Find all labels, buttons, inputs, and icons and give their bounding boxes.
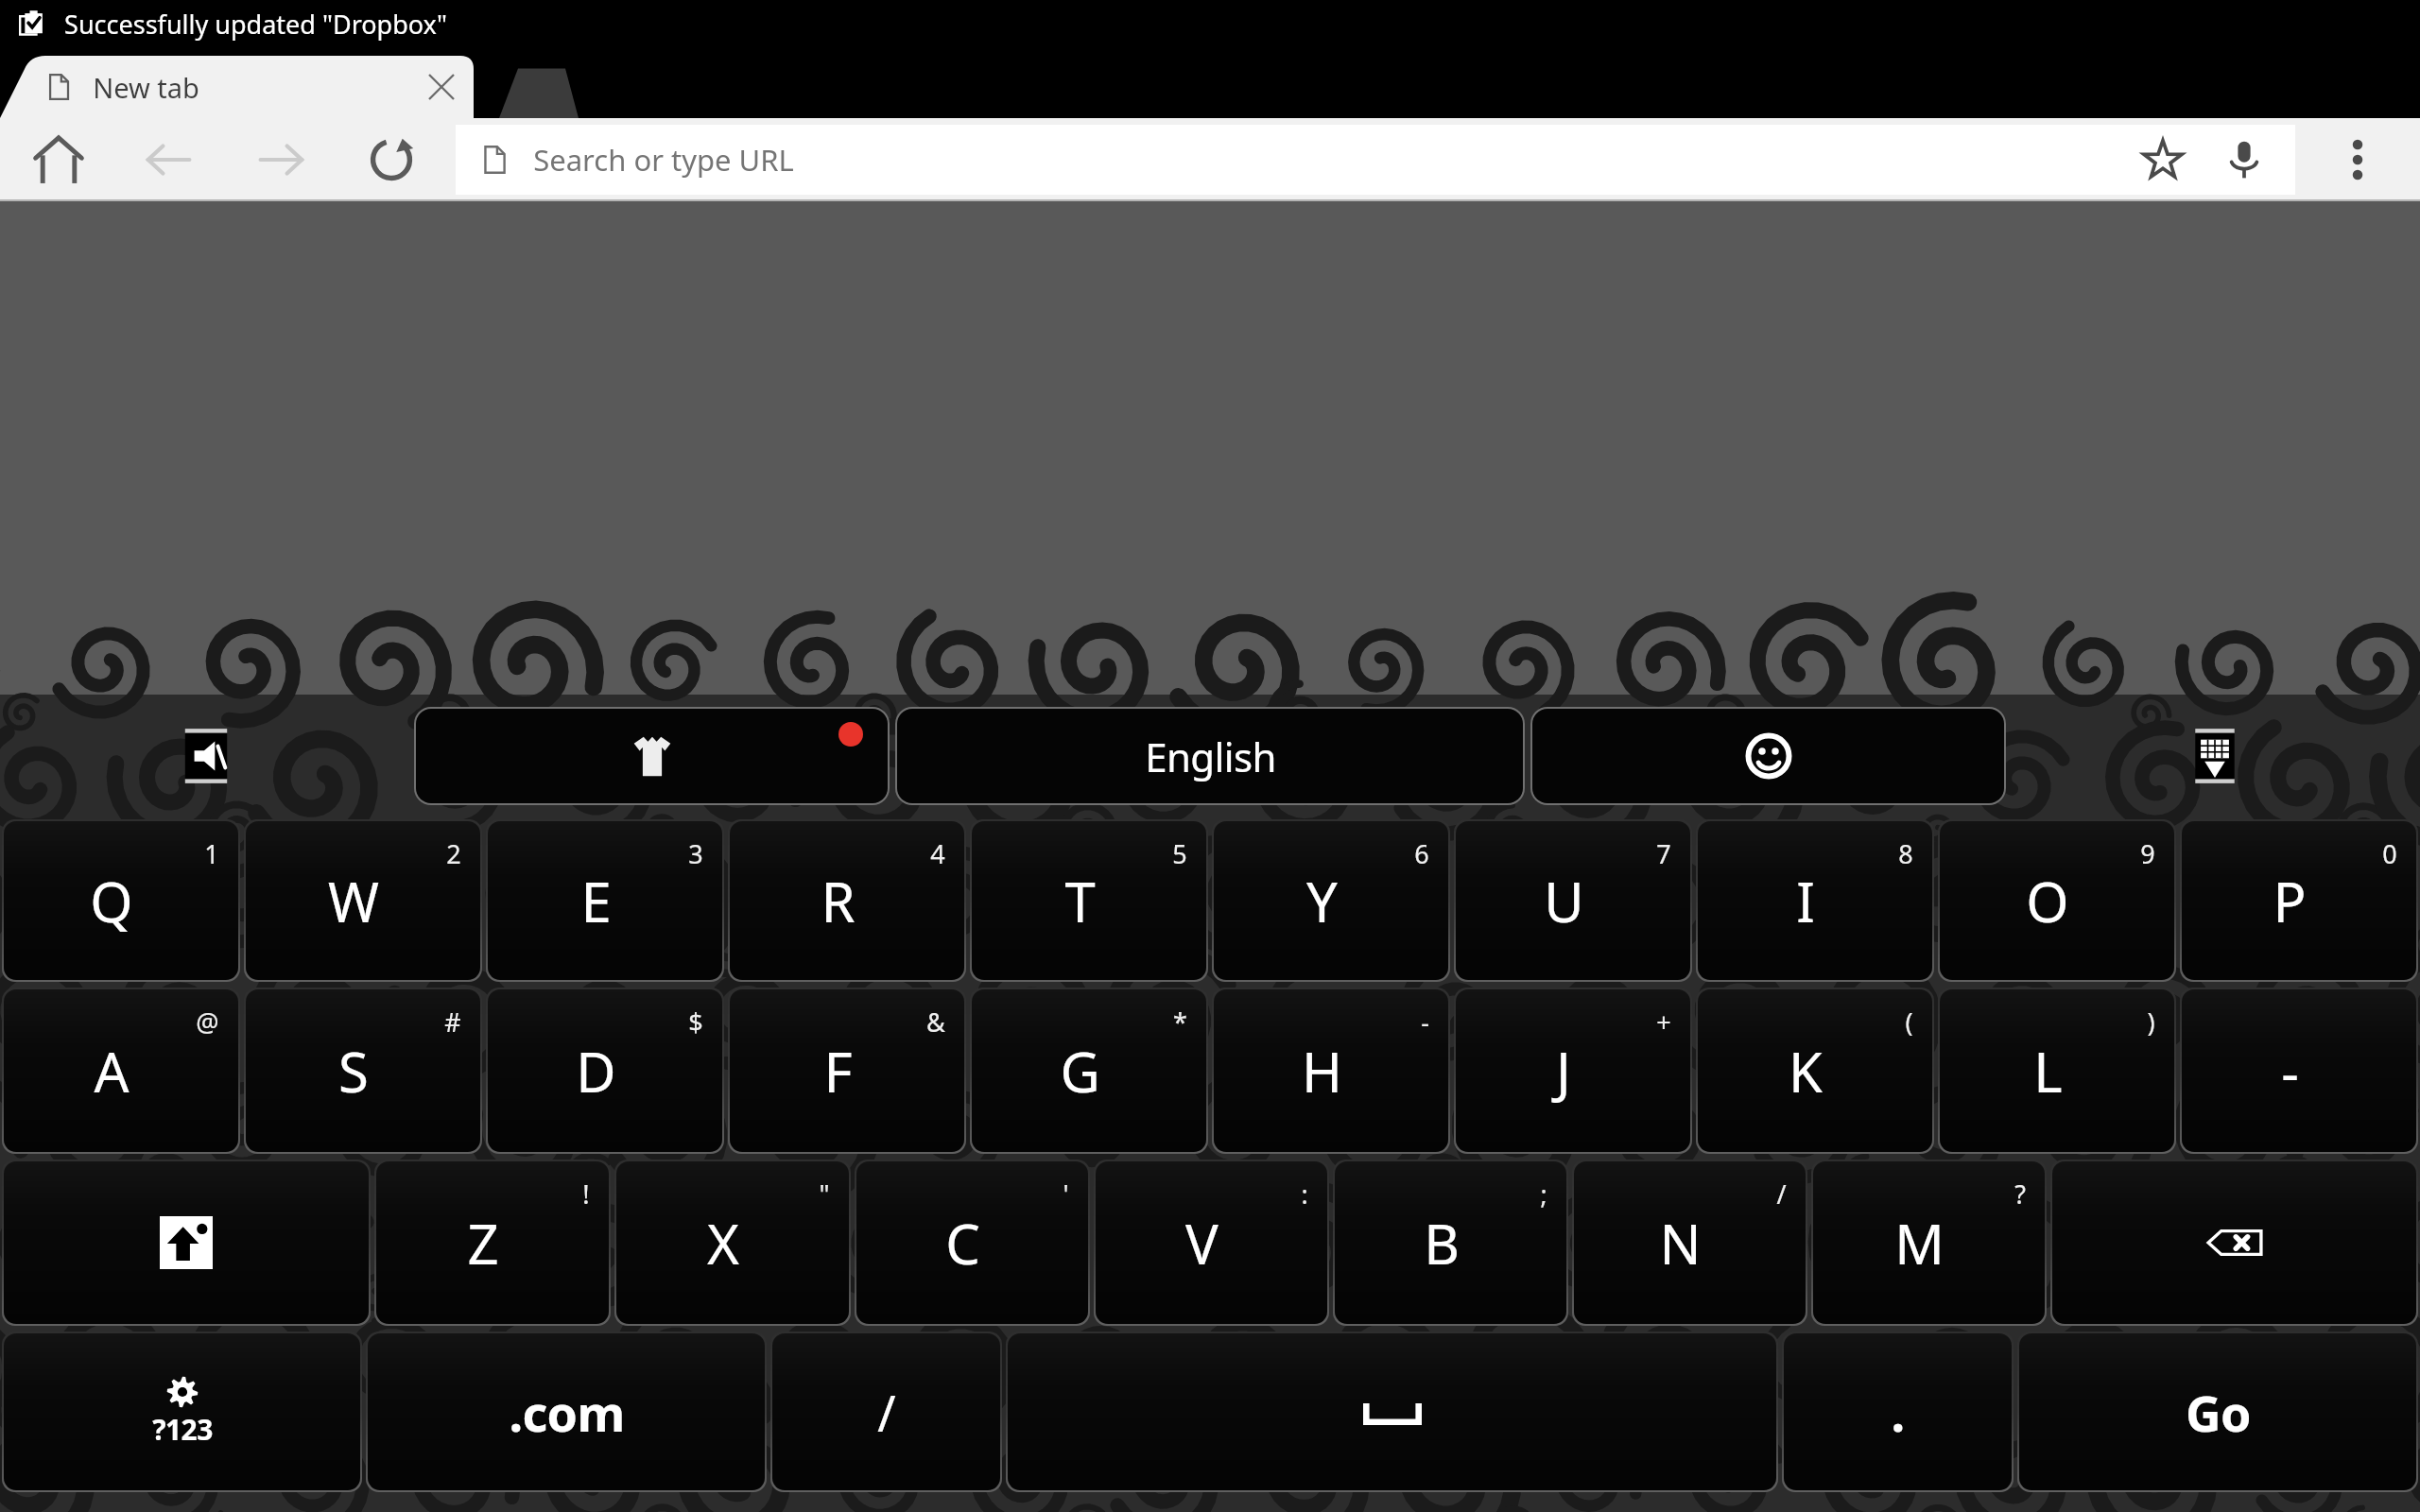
button[interactable]: Voice search bbox=[2206, 125, 2282, 195]
staticText: Q bbox=[90, 864, 133, 938]
staticText: : bbox=[1301, 1177, 1308, 1211]
button[interactable]: L bbox=[1940, 989, 2174, 1152]
button[interactable]: Hide keyboard bbox=[2178, 719, 2252, 793]
button[interactable]: D bbox=[488, 989, 722, 1152]
staticText: 5 bbox=[1172, 836, 1187, 871]
staticText: G bbox=[1060, 1034, 1100, 1108]
staticText: C bbox=[945, 1206, 980, 1280]
staticText: ' bbox=[1063, 1177, 1069, 1211]
staticText: D bbox=[576, 1034, 616, 1108]
button[interactable]: Voice input bbox=[169, 719, 243, 793]
button[interactable]: Bookmark bbox=[2125, 125, 2201, 195]
staticText: . bbox=[1891, 1379, 1905, 1446]
button[interactable]: I bbox=[1698, 821, 1932, 980]
button[interactable]: C bbox=[856, 1161, 1088, 1324]
button[interactable]: Y bbox=[1214, 821, 1448, 980]
staticText: ; bbox=[1540, 1177, 1547, 1211]
button[interactable]: .com bbox=[368, 1333, 765, 1490]
staticText: ! bbox=[582, 1177, 590, 1211]
staticText: English bbox=[1145, 730, 1276, 783]
button[interactable]: Forward bbox=[242, 120, 321, 199]
button[interactable]: Go bbox=[2019, 1333, 2416, 1490]
button[interactable]: Home bbox=[19, 120, 98, 199]
staticText: E bbox=[580, 864, 612, 938]
button[interactable]: X bbox=[616, 1161, 849, 1324]
button[interactable]: M bbox=[1813, 1161, 2045, 1324]
staticText: ? bbox=[2014, 1177, 2026, 1211]
button[interactable]: Q bbox=[4, 821, 238, 980]
staticText: Successfully updated "Dropbox" bbox=[64, 7, 447, 42]
button[interactable]: E bbox=[488, 821, 722, 980]
staticText: & bbox=[926, 1005, 945, 1039]
button[interactable]: Space bbox=[1008, 1333, 1776, 1490]
staticText: 0 bbox=[2382, 836, 2397, 871]
button[interactable]: - bbox=[2182, 989, 2416, 1152]
button[interactable]: O bbox=[1940, 821, 2174, 980]
staticText: Y bbox=[1306, 864, 1338, 938]
button[interactable]: V bbox=[1096, 1161, 1327, 1324]
button[interactable]: Back bbox=[129, 120, 208, 199]
button[interactable]: W bbox=[246, 821, 480, 980]
button[interactable]: F bbox=[730, 989, 964, 1152]
button[interactable]: Close tab bbox=[417, 62, 466, 112]
staticText: ) bbox=[2147, 1005, 2155, 1039]
staticText: 7 bbox=[1656, 836, 1671, 871]
button[interactable]: H bbox=[1214, 989, 1448, 1152]
button[interactable]: U bbox=[1456, 821, 1690, 980]
staticText: I bbox=[1796, 864, 1815, 938]
button[interactable]: P bbox=[2182, 821, 2416, 980]
staticText: O bbox=[2026, 864, 2069, 938]
button[interactable]: Period bbox=[1784, 1333, 2012, 1490]
staticText: H bbox=[1302, 1034, 1342, 1108]
button[interactable]: J bbox=[1456, 989, 1690, 1152]
staticText: @ bbox=[196, 1005, 219, 1039]
staticText: * bbox=[1173, 1005, 1187, 1039]
button[interactable]: N bbox=[1574, 1161, 1806, 1324]
staticText: # bbox=[444, 1005, 461, 1039]
button[interactable]: Emoji bbox=[1532, 709, 2004, 803]
staticText: Go bbox=[2186, 1379, 2251, 1446]
button[interactable]: R bbox=[730, 821, 964, 980]
staticText: F bbox=[823, 1034, 853, 1108]
staticText: ?123 bbox=[152, 1410, 213, 1449]
staticText: 8 bbox=[1898, 836, 1913, 871]
button[interactable]: Search or type URL bbox=[456, 125, 2295, 195]
staticText: B bbox=[1424, 1206, 1460, 1280]
staticText: L bbox=[2033, 1034, 2063, 1108]
staticText: $ bbox=[688, 1005, 703, 1039]
staticText: 1 bbox=[204, 836, 219, 871]
button[interactable]: A bbox=[4, 989, 238, 1152]
staticText: V bbox=[1185, 1206, 1219, 1280]
button[interactable]: S bbox=[246, 989, 480, 1152]
staticText: T bbox=[1064, 864, 1096, 938]
staticText: / bbox=[1776, 1177, 1787, 1211]
button[interactable]: B bbox=[1335, 1161, 1566, 1324]
staticText: 2 bbox=[446, 836, 461, 871]
staticText: A bbox=[94, 1034, 130, 1108]
button[interactable]: Theme bbox=[416, 709, 888, 803]
staticText: U bbox=[1544, 864, 1584, 938]
staticText: R bbox=[821, 864, 856, 938]
staticText: - bbox=[1421, 1005, 1429, 1039]
staticText: P bbox=[2273, 864, 2307, 938]
button[interactable]: K bbox=[1698, 989, 1932, 1152]
button[interactable]: Slash bbox=[772, 1333, 1000, 1490]
staticText: M bbox=[1894, 1206, 1945, 1280]
staticText: 3 bbox=[688, 836, 703, 871]
staticText: Search or type URL bbox=[533, 140, 794, 180]
staticText: 9 bbox=[2140, 836, 2155, 871]
button[interactable]: New tab bbox=[0, 47, 477, 118]
button[interactable]: G bbox=[972, 989, 1206, 1152]
button[interactable]: Reload bbox=[352, 120, 431, 199]
button[interactable]: Z bbox=[376, 1161, 609, 1324]
staticText: W bbox=[328, 864, 379, 938]
button[interactable]: English bbox=[897, 709, 1523, 803]
button[interactable]: Shift bbox=[4, 1161, 369, 1324]
button[interactable]: T bbox=[972, 821, 1206, 980]
staticText: 4 bbox=[930, 836, 945, 871]
staticText: .com bbox=[509, 1379, 625, 1446]
button[interactable]: Backspace bbox=[2052, 1161, 2416, 1324]
button[interactable]: Symbols bbox=[4, 1333, 360, 1490]
staticText: - bbox=[2281, 1034, 2299, 1108]
button[interactable]: More options bbox=[2318, 120, 2397, 199]
